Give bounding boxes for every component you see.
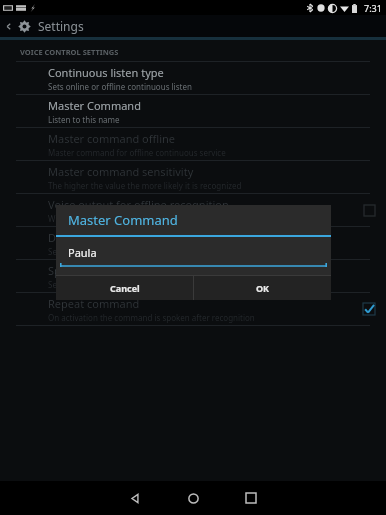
button[interactable]: Dialog mode	[0, 227, 386, 259]
staticText: Continuous listen type	[48, 65, 164, 80]
staticText: Master Command	[48, 98, 141, 113]
staticText: Listen to this name	[48, 114, 120, 125]
button[interactable]: Continuous listen type	[0, 62, 386, 94]
staticText: VOICE CONTROL SETTINGS	[20, 47, 119, 57]
button[interactable]: Back	[106, 481, 164, 515]
staticText: Paula	[68, 245, 97, 260]
button[interactable]: Voice output for offline recognition	[352, 194, 386, 226]
staticText: Dialog mode	[48, 230, 115, 245]
button[interactable]: Back	[0, 15, 386, 37]
staticText: The higher the value the more likely it …	[48, 180, 242, 191]
staticText: Master command offline	[48, 131, 175, 146]
staticText: Master Command	[68, 211, 178, 229]
staticText: Settings	[38, 18, 84, 34]
staticText: 7:31	[364, 2, 382, 14]
button[interactable]: Speech speed	[0, 260, 386, 292]
staticText: Repeat command	[48, 296, 140, 311]
button[interactable]: OK	[194, 276, 331, 300]
staticText: When it recognizes speaks the command	[48, 213, 202, 224]
button[interactable]: Master command offline	[0, 128, 386, 160]
staticText: Sets online or offline continuous listen	[48, 81, 192, 92]
staticText: Sets the dialog interaction mode	[48, 246, 170, 257]
staticText: Cancel	[110, 282, 140, 294]
button[interactable]: Home	[164, 481, 222, 515]
other: Back	[2, 15, 14, 37]
button[interactable]: Repeat command	[352, 293, 386, 325]
staticText: Master command for offline continuous se…	[48, 147, 226, 158]
staticText: On activation the command is spoken afte…	[48, 312, 255, 323]
staticText: Sets the speed of speech output	[48, 279, 169, 290]
button[interactable]: Cancel	[56, 276, 193, 300]
button[interactable]: Master Command	[0, 95, 386, 127]
button[interactable]: Recents	[222, 481, 280, 515]
staticText: Speech speed	[48, 263, 120, 278]
button[interactable]: Repeat command	[0, 293, 386, 325]
staticText: OK	[256, 282, 270, 294]
button[interactable]: Voice output for offline recognition	[0, 194, 386, 226]
staticText: Master command sensitivity	[48, 164, 194, 179]
button[interactable]: Master command sensitivity	[0, 161, 386, 193]
staticText: Voice output for offline recognition	[48, 197, 229, 212]
